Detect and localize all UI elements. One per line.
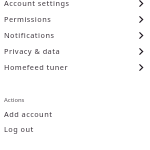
staticText: Permissions [4,14,52,24]
button[interactable]: Privacy & data [0,43,150,59]
button[interactable]: Permissions [0,11,150,27]
staticText: Actions [4,96,25,102]
staticText: Add account [4,109,53,119]
button[interactable]: Notifications [0,27,150,43]
button[interactable]: Account settings [0,0,150,11]
staticText: Homefeed tuner [4,62,68,72]
button[interactable]: Log out [0,124,150,134]
button[interactable]: Add account [0,109,150,119]
button[interactable]: Homefeed tuner [0,59,150,75]
staticText: Notifications [4,30,55,40]
staticText: Account settings [4,0,70,8]
staticText: Log out [4,124,34,134]
staticText: Privacy & data [4,46,61,56]
